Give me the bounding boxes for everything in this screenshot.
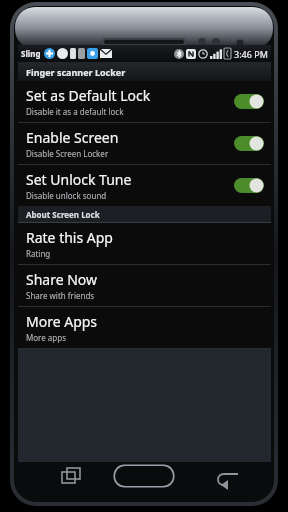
button[interactable]: More Apps <box>18 307 271 348</box>
staticText: More apps <box>26 332 66 343</box>
staticText: Disable it as a default lock <box>26 106 124 117</box>
button[interactable]: Toggle setting <box>234 178 264 193</box>
staticText: About Screen Lock <box>26 209 100 220</box>
staticText: Disable Screen Locker <box>26 148 109 159</box>
button[interactable]: Set Unlock Tune <box>18 165 271 206</box>
button[interactable]: Rate this App <box>18 223 271 264</box>
staticText: Rating <box>26 248 51 259</box>
staticText: Share with friends <box>26 290 95 301</box>
staticText: Share Now <box>26 270 98 289</box>
staticText: Set as Default Lock <box>26 86 151 105</box>
staticText: Finger scanner Locker <box>26 66 126 78</box>
staticText: Rate this App <box>26 228 113 247</box>
staticText: 3:46 PM <box>234 48 268 60</box>
staticText: Sling <box>21 48 41 59</box>
staticText: Set Unlock Tune <box>26 170 132 189</box>
button[interactable]: Toggle setting <box>234 94 264 109</box>
button[interactable]: Set as Default Lock <box>18 81 271 122</box>
staticText: Disable unlock sound <box>26 190 107 201</box>
button[interactable]: Enable Screen <box>18 123 271 164</box>
button[interactable]: Toggle setting <box>234 136 264 151</box>
staticText: More Apps <box>26 312 98 331</box>
button[interactable]: Share Now <box>18 265 271 306</box>
staticText: Enable Screen <box>26 128 119 147</box>
